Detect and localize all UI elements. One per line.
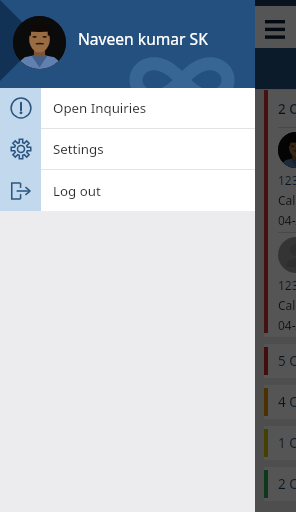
staticText: Log out — [53, 182, 101, 200]
staticText: Call Back — [278, 192, 296, 208]
button[interactable]: Log out — [0, 170, 255, 211]
staticText: 04-Apr-2019 — [278, 317, 296, 333]
staticText: Call Back — [278, 297, 296, 313]
staticText: Settings — [53, 140, 104, 158]
button[interactable]: 1 Open Inquiries — [264, 426, 296, 460]
staticText: 5 Open Inquiries — [278, 352, 296, 370]
staticText: 4 Open Inquiries — [278, 393, 296, 411]
button[interactable]: 2 Open Inquiries — [264, 90, 296, 337]
staticText: Naveen kumar SK — [78, 28, 208, 49]
staticText: 04-Apr-2019 — [278, 212, 296, 228]
button[interactable]: Settings — [0, 129, 255, 169]
button[interactable]: Open Inquiries — [0, 88, 255, 128]
button[interactable]: Open navigation drawer — [256, 8, 294, 46]
staticText: Open Inquiries — [53, 99, 147, 117]
staticText: 2 Open Inquiries — [278, 475, 296, 493]
staticText: 1234567890 — [278, 277, 296, 293]
button[interactable]: 4 Open Inquiries — [264, 385, 296, 419]
staticText: 1234567890 — [278, 172, 296, 188]
button[interactable]: 5 Open Inquiries — [264, 344, 296, 378]
staticText: 1 Open Inquiries — [278, 434, 296, 452]
button[interactable]: 2 Open Inquiries — [264, 467, 296, 501]
staticText: 2 Open Inquiries — [278, 100, 296, 118]
